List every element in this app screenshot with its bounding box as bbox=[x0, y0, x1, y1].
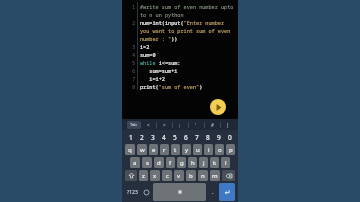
button[interactable]: y bbox=[182, 144, 191, 155]
staticText: 2 bbox=[140, 133, 144, 142]
button[interactable]: 8 bbox=[202, 131, 213, 143]
button[interactable]: h bbox=[188, 157, 197, 168]
staticText: g bbox=[180, 159, 184, 167]
staticText: q bbox=[128, 146, 132, 154]
button[interactable]: 1 bbox=[125, 131, 136, 143]
staticText: 6 bbox=[184, 133, 188, 142]
staticText: 3 bbox=[132, 43, 136, 50]
button[interactable]: o bbox=[215, 144, 224, 155]
button[interactable]: v bbox=[174, 170, 184, 181]
button[interactable]: ; bbox=[172, 119, 188, 130]
button[interactable]: m bbox=[210, 170, 220, 181]
staticText: r bbox=[163, 146, 166, 154]
staticText: w bbox=[140, 146, 145, 154]
button[interactable]: s bbox=[142, 157, 152, 168]
button[interactable]: n bbox=[198, 170, 208, 181]
button[interactable]: u bbox=[193, 144, 202, 155]
staticText: 5 bbox=[132, 59, 136, 66]
button[interactable]: r bbox=[160, 144, 169, 155]
staticText: to n un python bbox=[140, 11, 184, 18]
staticText: p bbox=[229, 146, 233, 154]
staticText: 4 bbox=[162, 133, 166, 142]
staticText: h bbox=[191, 159, 195, 167]
button[interactable]: 4 bbox=[158, 131, 169, 143]
staticText: Tab bbox=[130, 122, 137, 128]
button[interactable]: Tab bbox=[130, 122, 137, 128]
staticText: 9 bbox=[217, 133, 221, 142]
staticText: 8 bbox=[206, 133, 210, 142]
staticText: sum=0 bbox=[140, 51, 156, 58]
button[interactable]: 7 bbox=[191, 131, 202, 143]
staticText: x bbox=[153, 172, 157, 180]
staticText: num=int(input("Enter number upto bbox=[140, 19, 238, 26]
button[interactable]: t bbox=[171, 144, 180, 155]
button[interactable]: 2 bbox=[136, 131, 147, 143]
staticText: ?123 bbox=[127, 189, 138, 196]
staticText: 8 bbox=[132, 83, 136, 90]
staticText: 2 bbox=[132, 19, 136, 26]
button[interactable]: a bbox=[130, 157, 140, 168]
staticText: sum=sum+i bbox=[140, 67, 178, 74]
staticText: . bbox=[212, 188, 214, 196]
staticText: l bbox=[225, 159, 227, 167]
staticText: 6 bbox=[132, 67, 136, 74]
button[interactable]: 5 bbox=[169, 131, 180, 143]
staticText: ( bbox=[227, 122, 229, 128]
staticText: i=2 bbox=[140, 43, 150, 50]
button[interactable]: c bbox=[162, 170, 172, 181]
button[interactable]: ( bbox=[220, 119, 236, 130]
staticText: ; bbox=[179, 122, 181, 128]
button[interactable]: k bbox=[210, 157, 219, 168]
staticText: i bbox=[208, 146, 210, 154]
staticText: y bbox=[185, 146, 189, 154]
staticText: v bbox=[177, 172, 181, 180]
button[interactable]: b bbox=[186, 170, 196, 181]
button[interactable]: w bbox=[137, 144, 147, 155]
button[interactable]: ' bbox=[188, 119, 204, 130]
button[interactable]: . bbox=[208, 183, 217, 201]
button[interactable]: Emoji bbox=[142, 183, 151, 201]
staticText: o bbox=[218, 146, 222, 154]
staticText: number : ")) bbox=[140, 35, 178, 42]
button[interactable]: e bbox=[149, 144, 158, 155]
staticText: d bbox=[157, 159, 161, 167]
button[interactable]: Run bbox=[210, 99, 226, 115]
staticText: while i<=sum: bbox=[140, 59, 181, 66]
button[interactable]: j bbox=[199, 157, 208, 168]
staticText: k bbox=[213, 159, 217, 167]
staticText: < bbox=[147, 122, 150, 128]
button[interactable]: q bbox=[125, 144, 135, 155]
button[interactable]: > bbox=[156, 119, 172, 130]
button[interactable]: z bbox=[139, 170, 148, 181]
button[interactable]: d bbox=[154, 157, 164, 168]
button[interactable]: 0 bbox=[224, 131, 235, 143]
staticText: j bbox=[203, 159, 205, 167]
button[interactable]: 6 bbox=[180, 131, 191, 143]
staticText: a bbox=[133, 159, 137, 167]
staticText: b bbox=[189, 172, 193, 180]
staticText: print("sum of even") bbox=[140, 83, 203, 90]
staticText: 1 bbox=[132, 3, 136, 10]
button[interactable]: i bbox=[204, 144, 213, 155]
button[interactable]: ?123 bbox=[125, 183, 140, 201]
button[interactable]: Shift bbox=[125, 170, 137, 181]
button[interactable]: # bbox=[204, 119, 220, 130]
staticText: #write sum of even number upto 1 bbox=[140, 3, 238, 10]
button[interactable]: f bbox=[166, 157, 175, 168]
button[interactable]: Backspace bbox=[222, 170, 235, 181]
button[interactable]: Space bbox=[153, 183, 206, 201]
button[interactable]: 3 bbox=[147, 131, 158, 143]
button[interactable]: l bbox=[221, 157, 230, 168]
staticText: # bbox=[211, 122, 214, 128]
staticText: ' bbox=[195, 122, 197, 128]
button[interactable]: < bbox=[140, 119, 156, 130]
button[interactable]: p bbox=[226, 144, 235, 155]
staticText: s bbox=[146, 159, 149, 167]
staticText: u bbox=[196, 146, 200, 154]
staticText: 1 bbox=[129, 133, 133, 142]
staticText: f bbox=[169, 159, 172, 167]
button[interactable]: Enter bbox=[219, 183, 235, 201]
button[interactable]: 9 bbox=[213, 131, 224, 143]
button[interactable]: x bbox=[150, 170, 160, 181]
button[interactable]: g bbox=[177, 157, 186, 168]
